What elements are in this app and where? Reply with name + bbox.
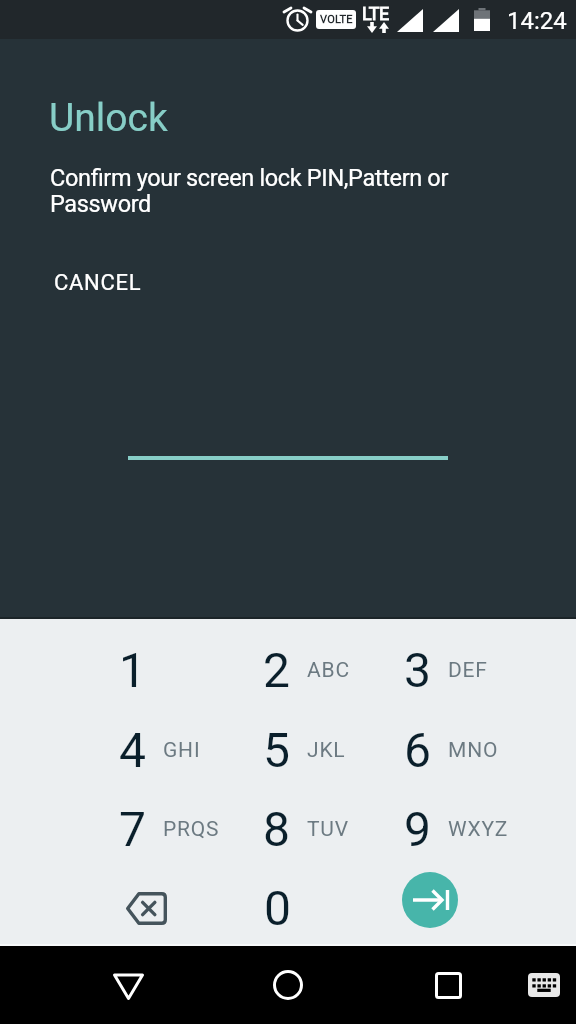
button[interactable]: Backspace [76, 868, 216, 948]
button[interactable]: Recents [388, 946, 508, 1024]
button[interactable]: 8 [223, 789, 363, 869]
button[interactable]: 6 [364, 710, 504, 790]
staticText: 14:24 [507, 7, 567, 35]
staticText: LTE [362, 3, 389, 24]
staticText: PRQS [163, 817, 220, 842]
staticText: 0 [264, 880, 291, 936]
staticText: WXYZ [448, 817, 509, 842]
staticText: Unlock [49, 95, 168, 141]
staticText: 4 [119, 722, 146, 778]
button[interactable]: 5 [223, 710, 363, 790]
staticText: 9 [404, 801, 431, 857]
staticText: ABC [307, 658, 350, 683]
staticText: MNO [448, 738, 499, 763]
staticText: 7 [119, 801, 146, 857]
staticText: VOLTE [320, 13, 353, 26]
button[interactable]: Switch keyboard [504, 946, 576, 1024]
button[interactable]: CANCEL [40, 260, 156, 306]
button[interactable]: Back [68, 946, 188, 1024]
staticText: CANCEL [54, 270, 142, 296]
staticText: 8 [263, 801, 290, 857]
button[interactable]: 4 [79, 710, 219, 790]
staticText: Confirm your screen lock PIN,Pattern or … [50, 164, 470, 218]
button[interactable]: 7 [79, 789, 219, 869]
staticText: 6 [404, 722, 431, 778]
button[interactable]: 2 [223, 630, 363, 710]
staticText: DEF [448, 658, 488, 683]
staticText: 5 [263, 722, 290, 778]
staticText: GHI [163, 738, 201, 763]
button[interactable]: 0 [207, 868, 347, 948]
staticText: TUV [307, 817, 349, 842]
staticText: 2 [263, 642, 290, 698]
button[interactable]: 1 [79, 630, 219, 710]
button[interactable]: 3 [364, 630, 504, 710]
button[interactable]: Home [228, 946, 348, 1024]
staticText: 1 [119, 642, 146, 698]
button[interactable]: Enter [360, 860, 500, 940]
staticText: JKL [307, 738, 346, 763]
button[interactable]: 9 [364, 789, 504, 869]
staticText: 3 [404, 642, 431, 698]
